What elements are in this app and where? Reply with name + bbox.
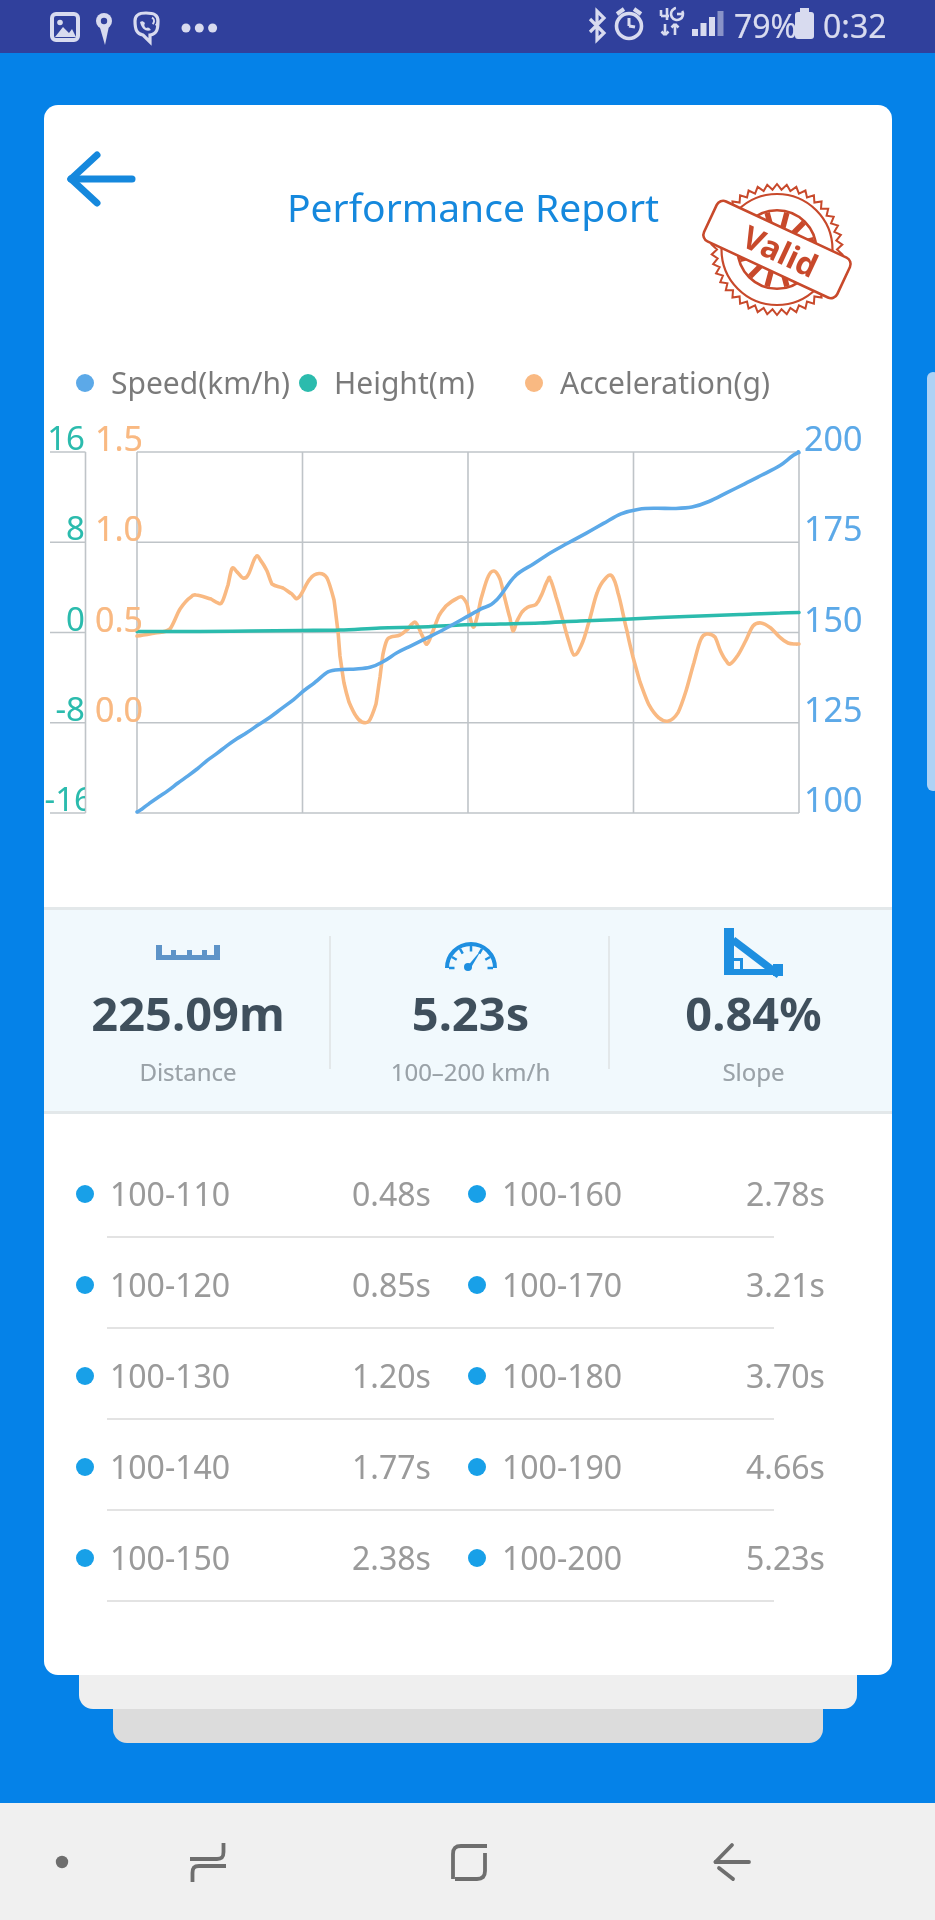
staticText: Performance Report bbox=[223, 180, 723, 233]
staticText: 2.78s bbox=[746, 1172, 825, 1216]
staticText: Speed(km/h) bbox=[111, 362, 290, 403]
button[interactable]: 5.23s bbox=[326, 907, 609, 1114]
staticText: 2.38s bbox=[352, 1536, 431, 1580]
button[interactable]: 0.84% bbox=[609, 907, 892, 1114]
staticText: 16 bbox=[44, 415, 85, 460]
button[interactable]: Recents bbox=[168, 1828, 248, 1896]
staticText: 1.5 bbox=[95, 415, 165, 461]
button[interactable]: 100-160 bbox=[468, 1148, 825, 1239]
staticText: 79% bbox=[734, 4, 798, 48]
button[interactable]: Menu bbox=[22, 1828, 102, 1896]
staticText: 175 bbox=[804, 505, 892, 551]
staticText: 0.5 bbox=[95, 596, 165, 642]
staticText: 5.23s bbox=[329, 981, 612, 1045]
staticText: 100-190 bbox=[502, 1445, 623, 1489]
staticText: 5.23s bbox=[746, 1536, 825, 1580]
staticText: 125 bbox=[804, 686, 892, 732]
staticText: 100-130 bbox=[110, 1354, 231, 1398]
staticText: 0.0 bbox=[95, 686, 165, 732]
staticText: 1.0 bbox=[95, 505, 165, 551]
button[interactable]: Home bbox=[429, 1828, 509, 1896]
staticText: 100-160 bbox=[502, 1172, 623, 1216]
button[interactable]: 225.09m bbox=[44, 907, 326, 1114]
staticText: 0.84% bbox=[612, 981, 892, 1045]
staticText: 100–200 km/h bbox=[329, 1055, 612, 1088]
staticText: 3.70s bbox=[746, 1354, 825, 1398]
button[interactable]: 100-190 bbox=[468, 1421, 825, 1512]
staticText: Acceleration(g) bbox=[560, 362, 770, 403]
staticText: Valid bbox=[735, 214, 826, 288]
staticText: Height(m) bbox=[334, 362, 475, 403]
staticText: 1.77s bbox=[352, 1445, 431, 1489]
staticText: 100-140 bbox=[110, 1445, 231, 1489]
button[interactable]: 100-120 bbox=[76, 1239, 431, 1330]
staticText: 100-200 bbox=[502, 1536, 623, 1580]
staticText: 8 bbox=[44, 505, 85, 550]
staticText: 0.48s bbox=[352, 1172, 431, 1216]
staticText: 0:32 bbox=[823, 4, 887, 48]
staticText: 200 bbox=[804, 415, 892, 461]
staticText: 150 bbox=[804, 596, 892, 642]
button[interactable]: Back bbox=[52, 135, 162, 223]
button[interactable]: 100-200 bbox=[468, 1512, 825, 1603]
staticText: 100-110 bbox=[110, 1172, 231, 1216]
staticText: Distance bbox=[47, 1055, 329, 1088]
staticText: -16 bbox=[44, 776, 85, 821]
staticText: 100-170 bbox=[502, 1263, 623, 1307]
staticText: 1.20s bbox=[352, 1354, 431, 1398]
button[interactable]: 100-110 bbox=[76, 1148, 431, 1239]
staticText: 100-180 bbox=[502, 1354, 623, 1398]
staticText: 100 bbox=[804, 776, 892, 822]
staticText: -8 bbox=[44, 686, 85, 731]
staticText: 0.85s bbox=[352, 1263, 431, 1307]
staticText: 4.66s bbox=[746, 1445, 825, 1489]
staticText: 100-150 bbox=[110, 1536, 231, 1580]
staticText: 225.09m bbox=[47, 981, 329, 1045]
staticText: 0 bbox=[44, 596, 85, 641]
button[interactable]: 100-180 bbox=[468, 1330, 825, 1421]
button[interactable]: 100-130 bbox=[76, 1330, 431, 1421]
button[interactable]: 100-150 bbox=[76, 1512, 431, 1603]
staticText: Slope bbox=[612, 1055, 892, 1088]
button[interactable]: 100-170 bbox=[468, 1239, 825, 1330]
button[interactable]: Back bbox=[692, 1828, 772, 1896]
staticText: 100-120 bbox=[110, 1263, 231, 1307]
staticText: 3.21s bbox=[746, 1263, 825, 1307]
button[interactable]: 100-140 bbox=[76, 1421, 431, 1512]
